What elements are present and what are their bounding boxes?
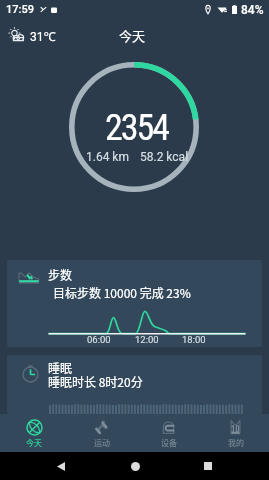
staticText: 06:00 — [87, 334, 111, 345]
button[interactable]: 运动 — [68, 414, 135, 453]
button[interactable]: 睡眠 — [7, 355, 262, 414]
button[interactable]: Home — [123, 454, 147, 478]
staticText: 设备 — [161, 437, 177, 449]
button[interactable]: Recent apps — [196, 454, 220, 478]
staticText: 12:00 — [135, 334, 159, 345]
staticText: 84% — [241, 3, 264, 17]
staticText: 今天 — [26, 437, 42, 449]
staticText: 31℃ — [30, 28, 56, 44]
staticText: 17:59 — [6, 3, 34, 16]
staticText: 18:00 — [182, 334, 206, 345]
staticText: 我的 — [228, 437, 244, 449]
button[interactable]: 今天 — [119, 26, 146, 45]
button[interactable]: 步数 — [7, 260, 262, 347]
staticText: 睡眠 — [48, 359, 73, 376]
staticText: 目标步数 10000 完成 23% — [53, 284, 191, 301]
button[interactable]: 今天 — [0, 414, 68, 453]
button[interactable]: Weather — [8, 27, 25, 44]
staticText: 步数 — [48, 266, 73, 283]
staticText: 今天 — [119, 26, 146, 45]
button[interactable]: Back — [49, 454, 73, 478]
staticText: 睡眠时长 8时20分 — [48, 373, 143, 390]
staticText: 2354 — [105, 107, 169, 149]
button[interactable]: 设备 — [135, 414, 202, 453]
staticText: 1.64 km — [86, 150, 129, 164]
button[interactable]: 10 — [202, 414, 269, 453]
staticText: 58.2 kcal — [140, 150, 189, 164]
staticText: 运动 — [94, 437, 110, 449]
staticText: 10 — [231, 424, 240, 434]
